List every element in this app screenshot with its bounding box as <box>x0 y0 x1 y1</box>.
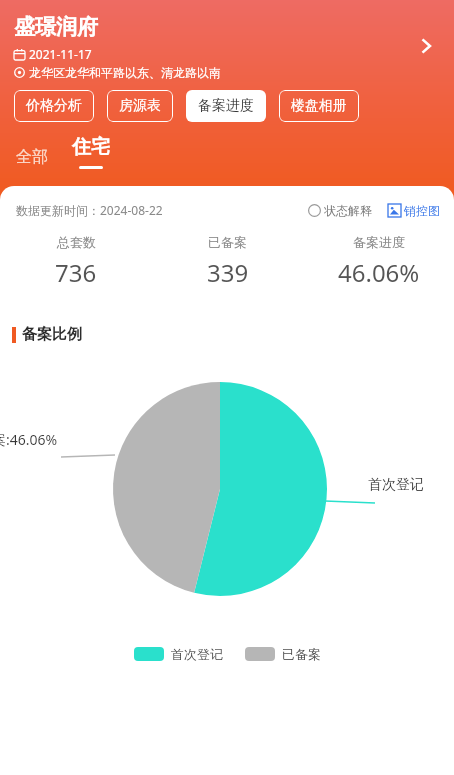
staticText: 备案进度 <box>198 97 254 115</box>
staticText: 已备案 <box>208 234 247 250</box>
staticText: 46.06% <box>338 256 420 289</box>
staticText: 房源表 <box>119 97 161 115</box>
staticText: 数据更新时间：2024-08-22 <box>16 202 163 218</box>
staticText: 首次登记 <box>171 646 223 662</box>
staticText: 总套数 <box>57 234 96 250</box>
staticText: 住宅 <box>72 135 110 159</box>
staticText: 首次登记 <box>368 476 424 494</box>
staticText: 已备案 <box>282 646 321 662</box>
staticText: 销控图 <box>404 203 440 218</box>
button[interactable]: 住宅 <box>68 135 114 169</box>
staticText: 2021-11-17 <box>29 46 92 62</box>
button[interactable]: 房源表 <box>107 90 173 122</box>
button[interactable]: More <box>408 28 444 64</box>
staticText: 龙华区龙华和平路以东、清龙路以南 <box>29 65 221 80</box>
staticText: 339 <box>207 256 249 289</box>
button[interactable]: 状态解释 <box>308 203 372 218</box>
button[interactable]: 备案进度 <box>186 90 266 122</box>
staticText: 价格分析 <box>26 97 82 115</box>
button[interactable]: 全部 <box>12 145 52 169</box>
staticText: 状态解释 <box>324 203 372 218</box>
button[interactable]: 价格分析 <box>14 90 94 122</box>
staticText: 备案比例 <box>22 325 82 344</box>
staticText: 备案进度 <box>353 234 405 250</box>
staticText: 736 <box>55 256 97 289</box>
staticText: 盛璟润府 <box>14 14 98 40</box>
button[interactable]: 销控图 <box>388 203 440 218</box>
staticText: 楼盘相册 <box>291 97 347 115</box>
staticText: 全部 <box>16 147 48 167</box>
staticText: 案:46.06% <box>0 430 58 449</box>
button[interactable]: 楼盘相册 <box>279 90 359 122</box>
